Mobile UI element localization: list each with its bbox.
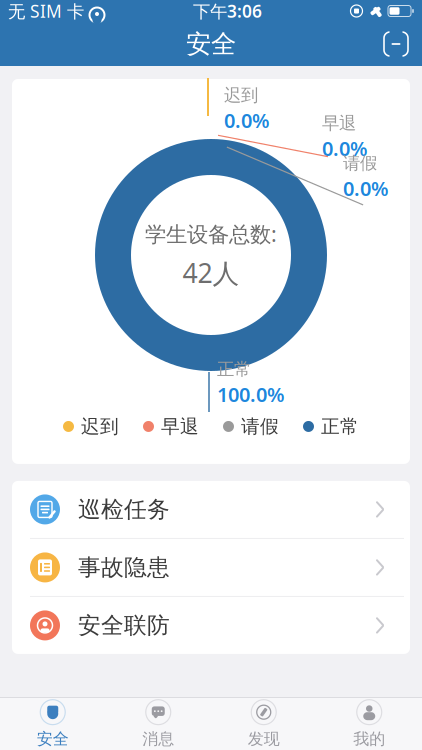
staticText: 0.0%	[343, 175, 389, 201]
button[interactable]: 安全	[0, 698, 105, 750]
staticText: 迟到	[224, 85, 258, 106]
staticText: 安全	[186, 28, 236, 59]
staticText: 迟到	[81, 415, 119, 438]
staticText: 巡检任务	[78, 495, 170, 523]
staticText: 安全联防	[78, 611, 170, 639]
staticText: 请假	[343, 153, 377, 174]
button[interactable]: 消息	[105, 698, 211, 750]
button[interactable]: 扫一扫	[374, 24, 418, 64]
staticText: 请假	[241, 415, 279, 438]
button[interactable]: 发现	[211, 698, 316, 750]
staticText: 正常	[217, 359, 251, 380]
staticText: 事故隐患	[78, 553, 170, 581]
staticText: 0.0%	[224, 107, 270, 133]
staticText: 0.0%	[322, 135, 368, 161]
button[interactable]: 我的	[316, 698, 422, 750]
button[interactable]: 安全联防	[12, 597, 410, 654]
staticText: 100.0%	[217, 381, 285, 407]
staticText: 正常	[321, 415, 359, 438]
button[interactable]: 巡检任务	[12, 481, 410, 538]
staticText: 安全	[37, 729, 69, 749]
button[interactable]: 事故隐患	[12, 539, 410, 596]
staticText: 42人	[182, 255, 239, 290]
staticText: 下午3:06	[193, 0, 262, 22]
staticText: 无 SIM 卡	[8, 0, 84, 22]
staticText: 学生设备总数:	[145, 220, 277, 248]
staticText: 消息	[142, 729, 174, 749]
staticText: 发现	[248, 729, 280, 749]
staticText: 早退	[161, 415, 199, 438]
staticText: 早退	[322, 113, 356, 134]
staticText: 我的	[353, 729, 385, 749]
